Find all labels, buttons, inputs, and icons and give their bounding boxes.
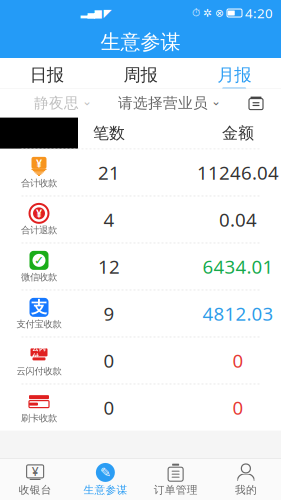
button[interactable]: ✓ bbox=[0, 244, 281, 290]
button[interactable]: 静夜思 bbox=[28, 89, 98, 117]
staticText: 刷卡收款 bbox=[21, 412, 57, 424]
staticText: ✲ bbox=[203, 7, 212, 19]
staticText: ▂▄▆ bbox=[80, 8, 101, 18]
button[interactable]: 订单管理 bbox=[140, 459, 211, 500]
button[interactable]: 我的 bbox=[211, 459, 281, 500]
button[interactable]: 请选择营业员 bbox=[112, 89, 227, 117]
staticText: 月报 bbox=[217, 64, 251, 86]
staticText: 12 bbox=[98, 254, 120, 279]
button[interactable]: ✎ bbox=[70, 459, 140, 500]
button[interactable]: ¥ bbox=[0, 459, 70, 500]
staticText: ¥ bbox=[32, 463, 39, 479]
button[interactable]: 日报 bbox=[0, 58, 94, 88]
staticText: 4812.03 bbox=[202, 301, 273, 326]
button[interactable]: 选择日期 bbox=[241, 89, 271, 117]
staticText: 支 bbox=[31, 297, 47, 317]
staticText: 笔数 bbox=[93, 123, 125, 143]
button[interactable]: 刷卡收款 bbox=[0, 385, 281, 431]
staticText: ⏱ bbox=[192, 8, 200, 18]
staticText: 生意参谋 bbox=[100, 30, 180, 54]
staticText: 金额 bbox=[222, 123, 254, 143]
button[interactable]: 周报 bbox=[94, 58, 187, 88]
staticText: ⊗ bbox=[215, 7, 224, 19]
staticText: 21 bbox=[98, 160, 120, 185]
button[interactable]: ¥ bbox=[0, 150, 281, 196]
staticText: 日报 bbox=[30, 64, 64, 86]
staticText: 云闪付 bbox=[32, 344, 46, 361]
staticText: ✓ bbox=[34, 254, 44, 267]
staticText: 静夜思 bbox=[34, 94, 79, 112]
staticText: 订单管理 bbox=[154, 483, 198, 496]
staticText: 4:20 bbox=[245, 4, 273, 22]
staticText: 微信收款 bbox=[21, 271, 57, 283]
staticText: ⌄ bbox=[82, 94, 92, 108]
staticText: 合计退款 bbox=[21, 224, 57, 236]
staticText: 11246.04 bbox=[197, 160, 279, 185]
button[interactable]: ¥ bbox=[0, 197, 281, 243]
staticText: 周报 bbox=[123, 64, 157, 86]
staticText: 请选择营业员 bbox=[118, 94, 208, 112]
staticText: ¥ bbox=[36, 206, 42, 220]
staticText: 收银台 bbox=[19, 483, 52, 496]
staticText: 6434.01 bbox=[202, 254, 273, 279]
staticText: ¥ bbox=[36, 156, 42, 170]
staticText: ◤ bbox=[103, 7, 111, 19]
staticText: 生意参谋 bbox=[83, 483, 127, 496]
staticText: 云闪付收款 bbox=[16, 365, 61, 377]
staticText: 0 bbox=[232, 395, 243, 420]
button[interactable]: 支 bbox=[0, 291, 281, 337]
button[interactable]: 月报 bbox=[187, 58, 281, 88]
staticText: 0 bbox=[232, 348, 243, 373]
staticText: 0.04 bbox=[219, 207, 257, 232]
button[interactable]: 云闪付 bbox=[0, 338, 281, 384]
staticText: ⌄ bbox=[211, 94, 221, 108]
staticText: 合计收款 bbox=[21, 177, 57, 189]
staticText: 我的 bbox=[235, 483, 257, 496]
staticText: 支付宝收款 bbox=[16, 318, 61, 330]
staticText: 9 bbox=[103, 301, 114, 326]
staticText: 0 bbox=[103, 395, 114, 420]
staticText: 0 bbox=[103, 348, 114, 373]
staticText: ✎ bbox=[100, 465, 111, 480]
staticText: 4 bbox=[103, 207, 114, 232]
